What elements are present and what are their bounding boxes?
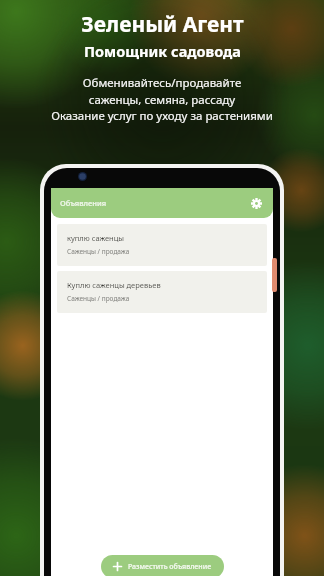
button[interactable]: Куплю саженцы деревьев — [57, 271, 267, 313]
staticText: Помощник садовода — [84, 41, 241, 61]
staticText: Саженцы / продажа — [67, 247, 130, 256]
staticText: Обменивайтесь/продавайте саженцы, семяна… — [51, 75, 273, 123]
staticText: Объявления — [60, 198, 107, 208]
button[interactable]: Разместить объявление — [101, 555, 224, 576]
staticText: куплю саженцы — [67, 233, 124, 243]
button[interactable]: куплю саженцы — [57, 224, 267, 266]
staticText: Куплю саженцы деревьев — [67, 280, 161, 290]
button[interactable]: Settings — [248, 195, 264, 211]
staticText: Зеленый Агент — [81, 10, 244, 39]
staticText: Разместить объявление — [128, 562, 212, 572]
staticText: Саженцы / продажа — [67, 294, 130, 303]
